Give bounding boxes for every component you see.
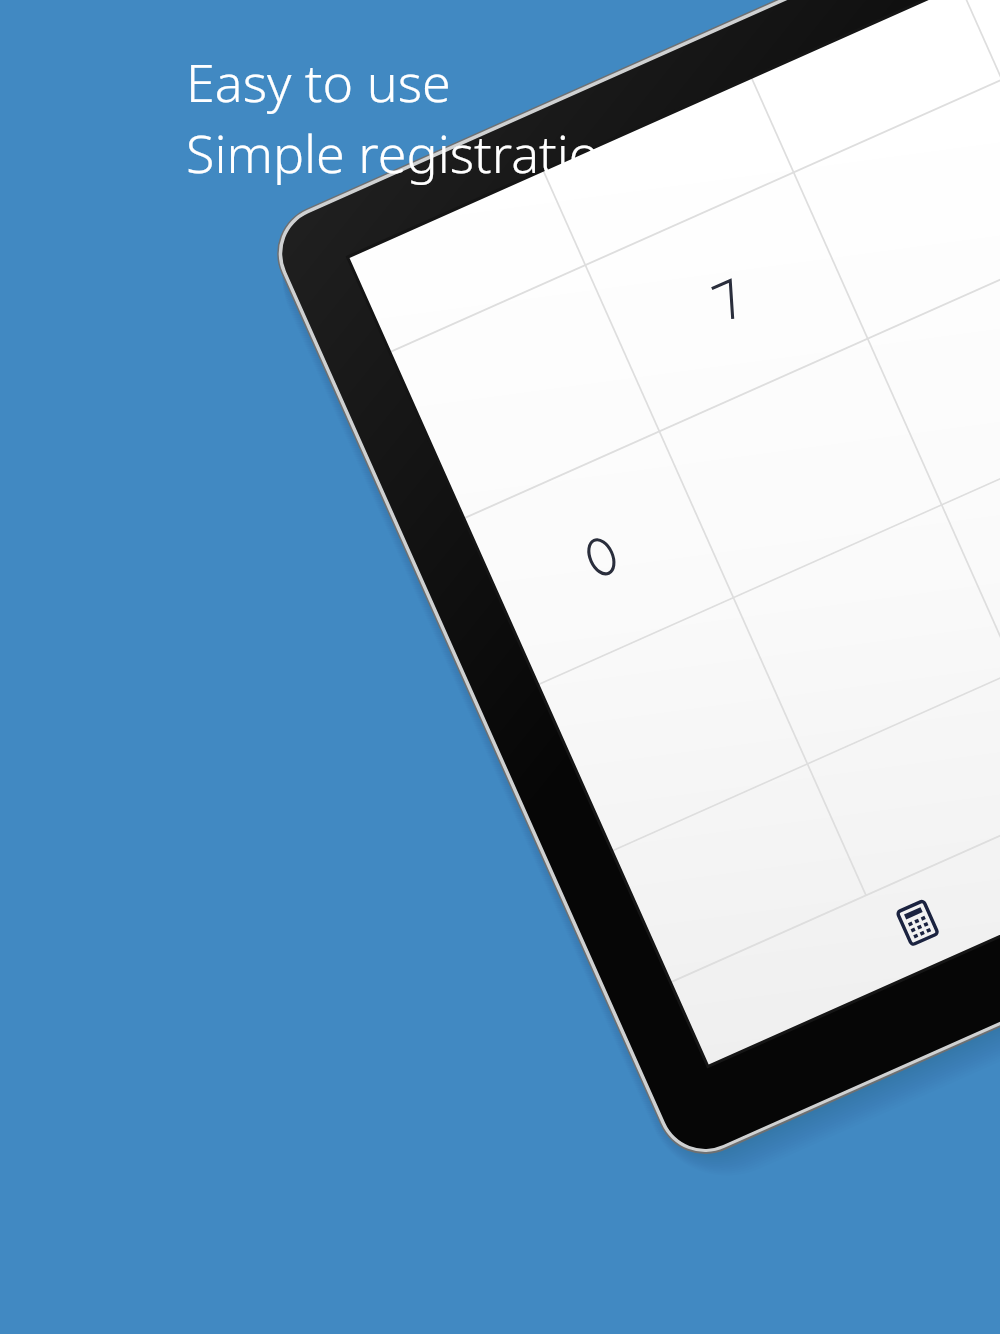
staticText: Simple registration: [186, 117, 631, 188]
staticText: Easy to use: [186, 46, 451, 117]
button[interactable]: Tablet app preview: [660, 440, 1000, 1334]
